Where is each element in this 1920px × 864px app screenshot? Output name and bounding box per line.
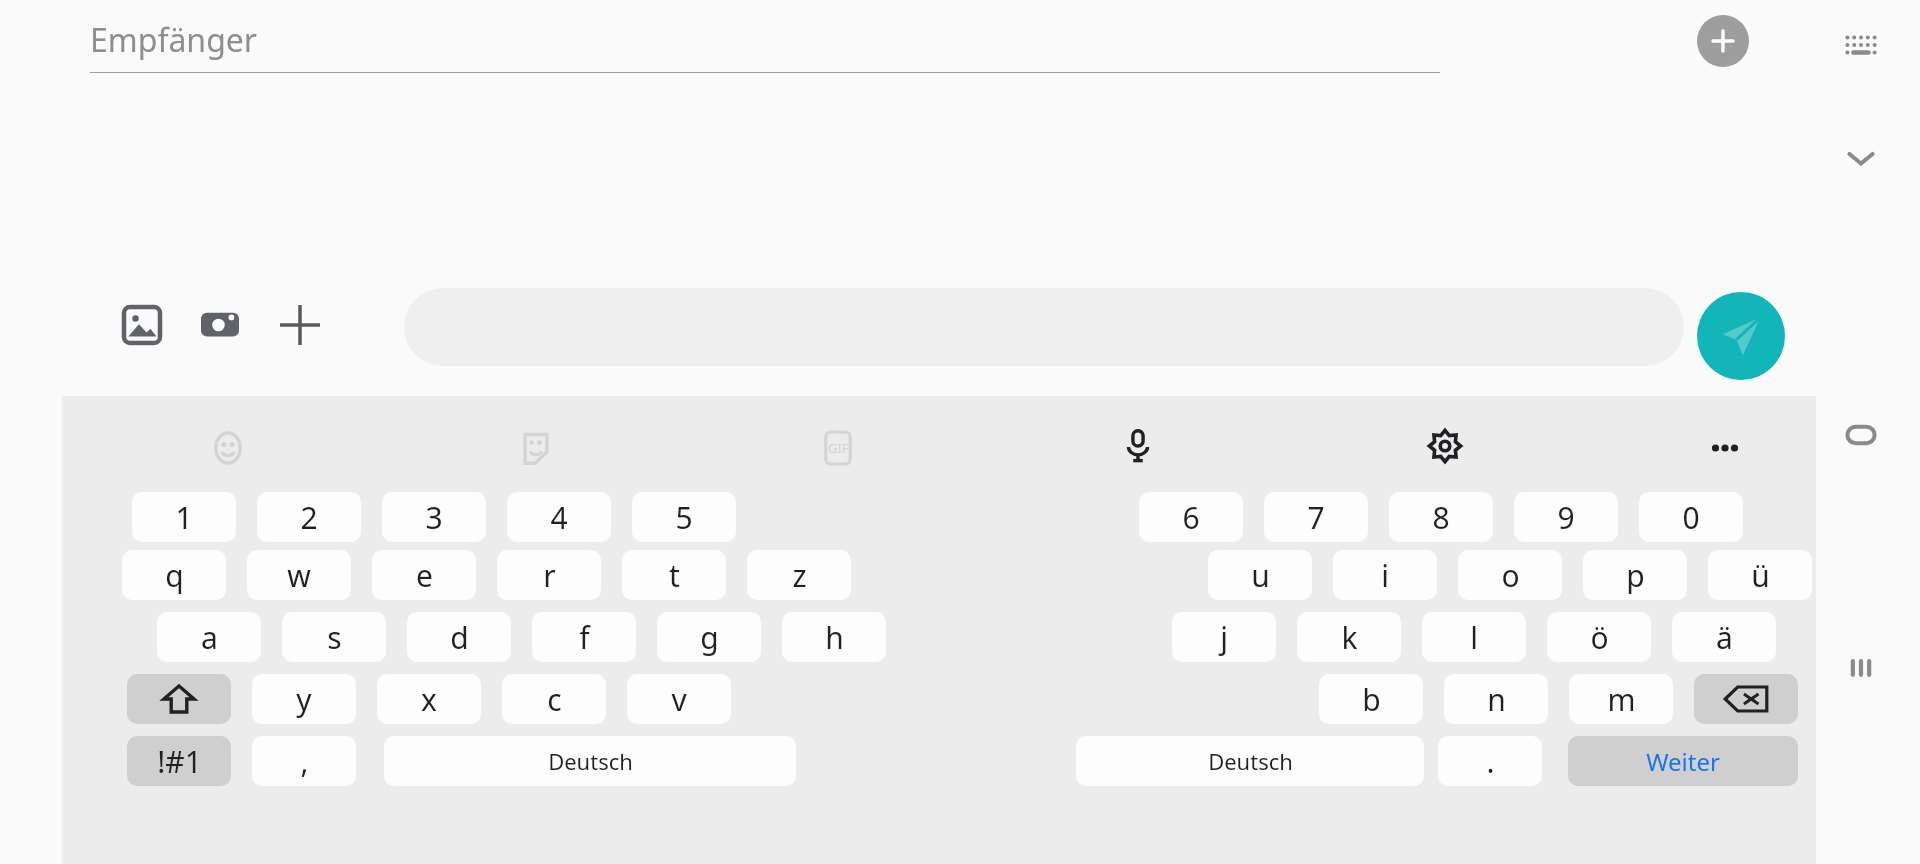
button[interactable]: Send bbox=[1697, 292, 1785, 380]
button[interactable]: 7 bbox=[1264, 492, 1368, 542]
button[interactable]: Backspace bbox=[1694, 674, 1798, 724]
button[interactable]: Deutsch bbox=[384, 736, 796, 786]
button[interactable]: Shift bbox=[127, 674, 231, 724]
button[interactable]: a bbox=[157, 612, 261, 662]
button[interactable]: Voice input bbox=[1110, 418, 1166, 474]
button[interactable]: e bbox=[372, 550, 476, 600]
button[interactable]: c bbox=[502, 674, 606, 724]
staticText: ö bbox=[1590, 617, 1609, 658]
button[interactable]: 0 bbox=[1639, 492, 1743, 542]
staticText: 9 bbox=[1557, 497, 1575, 538]
staticText: t bbox=[669, 555, 680, 596]
staticText: 3 bbox=[425, 497, 443, 538]
staticText: g bbox=[700, 617, 719, 658]
button[interactable]: 5 bbox=[632, 492, 736, 542]
button[interactable]: Hide keyboard bbox=[1838, 135, 1884, 181]
staticText: d bbox=[450, 617, 469, 658]
staticText: n bbox=[1487, 679, 1506, 720]
button[interactable]: o bbox=[1458, 550, 1562, 600]
button[interactable]: 2 bbox=[257, 492, 361, 542]
button[interactable]: Take photo bbox=[192, 297, 248, 353]
button[interactable]: Empfänger bbox=[90, 8, 1440, 72]
button[interactable]: u bbox=[1208, 550, 1312, 600]
staticText: q bbox=[165, 555, 184, 596]
button[interactable]: Keyboard settings bbox=[1417, 418, 1473, 474]
button[interactable]: 9 bbox=[1514, 492, 1618, 542]
button[interactable]: Add recipient bbox=[1697, 15, 1749, 67]
staticText: Empfänger bbox=[90, 18, 258, 62]
staticText: p bbox=[1626, 555, 1645, 596]
button[interactable]: Insert image bbox=[114, 297, 170, 353]
button[interactable]: v bbox=[627, 674, 731, 724]
button[interactable]: Home bbox=[1838, 412, 1884, 458]
button[interactable]: ö bbox=[1547, 612, 1651, 662]
button[interactable]: h bbox=[782, 612, 886, 662]
button[interactable]: d bbox=[407, 612, 511, 662]
staticText: u bbox=[1251, 555, 1270, 596]
staticText: Deutsch bbox=[548, 746, 633, 776]
button[interactable]: More options bbox=[1697, 420, 1753, 476]
button[interactable]: t bbox=[622, 550, 726, 600]
staticText: f bbox=[579, 617, 590, 658]
staticText: Deutsch bbox=[1208, 746, 1293, 776]
button[interactable]: Recent apps bbox=[1838, 645, 1884, 691]
staticText: v bbox=[671, 679, 687, 720]
staticText: , bbox=[300, 741, 309, 782]
staticText: l bbox=[1470, 617, 1478, 658]
button[interactable]: q bbox=[122, 550, 226, 600]
button[interactable]: More attachments bbox=[272, 297, 328, 353]
button[interactable]: 3 bbox=[382, 492, 486, 542]
staticText: s bbox=[327, 617, 342, 658]
button[interactable]: i bbox=[1333, 550, 1437, 600]
staticText: 4 bbox=[550, 497, 568, 538]
button[interactable]: Emoji bbox=[200, 420, 256, 476]
button[interactable]: Weiter bbox=[1568, 736, 1798, 786]
button[interactable]: k bbox=[1297, 612, 1401, 662]
staticText: 2 bbox=[300, 497, 318, 538]
button[interactable]: 4 bbox=[507, 492, 611, 542]
button[interactable]: m bbox=[1569, 674, 1673, 724]
staticText: 5 bbox=[675, 497, 693, 538]
staticText: 6 bbox=[1182, 497, 1200, 538]
button[interactable]: f bbox=[532, 612, 636, 662]
staticText: r bbox=[543, 555, 556, 596]
button[interactable]: ä bbox=[1672, 612, 1776, 662]
staticText: ä bbox=[1716, 617, 1733, 658]
staticText: !#1 bbox=[157, 741, 202, 782]
staticText: Weiter bbox=[1646, 745, 1720, 778]
staticText: ü bbox=[1751, 555, 1770, 596]
staticText: 0 bbox=[1682, 497, 1700, 538]
button[interactable]: Stickers bbox=[508, 420, 564, 476]
button[interactable]: w bbox=[247, 550, 351, 600]
button[interactable]: , bbox=[252, 736, 356, 786]
staticText: e bbox=[416, 555, 433, 596]
staticText: GIF bbox=[828, 439, 849, 457]
button[interactable]: 8 bbox=[1389, 492, 1493, 542]
staticText: x bbox=[421, 679, 437, 720]
button[interactable]: g bbox=[657, 612, 761, 662]
button[interactable]: x bbox=[377, 674, 481, 724]
button[interactable]: s bbox=[282, 612, 386, 662]
button[interactable]: 1 bbox=[132, 492, 236, 542]
button[interactable]: Deutsch bbox=[1076, 736, 1424, 786]
staticText: z bbox=[792, 555, 807, 596]
staticText: y bbox=[296, 679, 312, 720]
button[interactable]: 6 bbox=[1139, 492, 1243, 542]
button[interactable]: y bbox=[252, 674, 356, 724]
button[interactable]: p bbox=[1583, 550, 1687, 600]
button[interactable]: r bbox=[497, 550, 601, 600]
button[interactable]: Show keyboard bbox=[1838, 22, 1884, 68]
button[interactable]: ü bbox=[1708, 550, 1812, 600]
staticText: 1 bbox=[175, 497, 193, 538]
button[interactable]: j bbox=[1172, 612, 1276, 662]
button[interactable]: GIF bbox=[810, 420, 866, 476]
button[interactable]: . bbox=[1438, 736, 1542, 786]
button[interactable]: b bbox=[1319, 674, 1423, 724]
button[interactable]: n bbox=[1444, 674, 1548, 724]
button[interactable]: !#1 bbox=[127, 736, 231, 786]
staticText: j bbox=[1220, 617, 1228, 658]
staticText: . bbox=[1486, 741, 1495, 782]
button[interactable]: l bbox=[1422, 612, 1526, 662]
button[interactable]: z bbox=[747, 550, 851, 600]
